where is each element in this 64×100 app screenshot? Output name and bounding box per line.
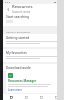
staticText: Learn more (8, 88, 22, 91)
staticText: Resources (12, 4, 33, 10)
button[interactable]: Back (5, 6, 11, 12)
staticText: HELPFUL RESOURCES (6, 30, 31, 33)
button[interactable]: Getting started (3, 34, 64, 47)
staticText: My favourites (6, 51, 27, 55)
staticText: Getting started (6, 36, 30, 40)
button[interactable]: More options (56, 6, 62, 12)
button[interactable]: Start searching (3, 13, 64, 26)
button[interactable]: My favourites (3, 49, 64, 62)
button[interactable]: Profile (49, 94, 64, 100)
staticText: Download guide (6, 66, 31, 69)
button[interactable]: Download guide (3, 64, 64, 71)
button[interactable]: Resources Manager (6, 71, 57, 93)
staticText: Support centre (12, 10, 31, 13)
button[interactable]: Explore (19, 94, 34, 100)
staticText: Start searching (6, 15, 30, 19)
button[interactable]: Library (34, 94, 49, 100)
staticText: Resources Manager (8, 79, 37, 83)
button[interactable]: Home (3, 94, 19, 100)
